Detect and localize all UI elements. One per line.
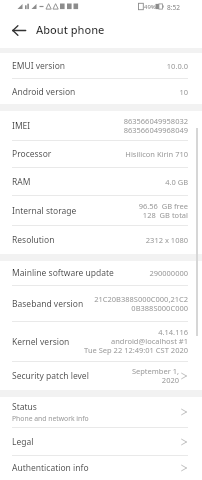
staticText: Mainline software update <box>12 267 114 279</box>
staticText: Phone and network info <box>12 414 89 423</box>
button[interactable]: Internal storage <box>0 196 202 226</box>
staticText: IMEI <box>12 120 31 132</box>
staticText: Resolution <box>12 234 55 246</box>
button[interactable]: Back <box>8 19 30 41</box>
button[interactable]: Status <box>0 397 202 428</box>
staticText: 96.56 GB free 128 GB total <box>138 201 188 221</box>
button[interactable]: Resolution <box>0 226 202 254</box>
staticText: Kernel version <box>12 336 70 348</box>
staticText: 290000000 <box>149 268 188 278</box>
staticText: 4.0 GB <box>165 177 188 187</box>
button[interactable]: Baseband version <box>0 286 202 322</box>
staticText: Status <box>12 401 37 413</box>
staticText: Legal <box>12 436 34 448</box>
button[interactable]: IMEI <box>0 111 202 141</box>
staticText: RAM <box>12 176 31 188</box>
staticText: September 1, 2020 <box>131 366 179 386</box>
staticText: Baseband version <box>12 298 84 310</box>
staticText: EMUI version <box>12 60 66 72</box>
staticText: 8:52 <box>167 3 180 12</box>
button[interactable]: Legal <box>0 428 202 456</box>
staticText: Authentication info <box>12 462 89 474</box>
staticText: 4.14.116 android@localhost #1 Tue Sep 22… <box>84 327 188 356</box>
button[interactable]: Kernel version <box>0 322 202 362</box>
staticText: 2312 x 1080 <box>145 235 188 245</box>
button[interactable]: Authentication info <box>0 456 202 480</box>
button[interactable]: Mainline software update <box>0 261 202 286</box>
staticText: 863566049958032 863566049968049 <box>123 116 188 136</box>
staticText: Android version <box>12 86 76 98</box>
staticText: 10.0.0 <box>166 61 188 71</box>
staticText: Hisilicon Kirin 710 <box>125 149 188 159</box>
staticText: About phone <box>36 22 105 37</box>
button[interactable]: RAM <box>0 168 202 196</box>
button[interactable]: Security patch level <box>0 362 202 390</box>
staticText: Internal storage <box>12 205 77 217</box>
staticText: 21C20B388S000C000,21C2 0B388S000C000 <box>94 294 188 314</box>
button[interactable]: Processor <box>0 141 202 168</box>
button[interactable]: Android version <box>0 79 202 104</box>
staticText: 49% <box>144 3 156 11</box>
staticText: 10 <box>179 87 188 97</box>
staticText: Processor <box>12 148 52 160</box>
staticText: Security patch level <box>12 370 89 382</box>
button[interactable]: EMUI version <box>0 53 202 79</box>
